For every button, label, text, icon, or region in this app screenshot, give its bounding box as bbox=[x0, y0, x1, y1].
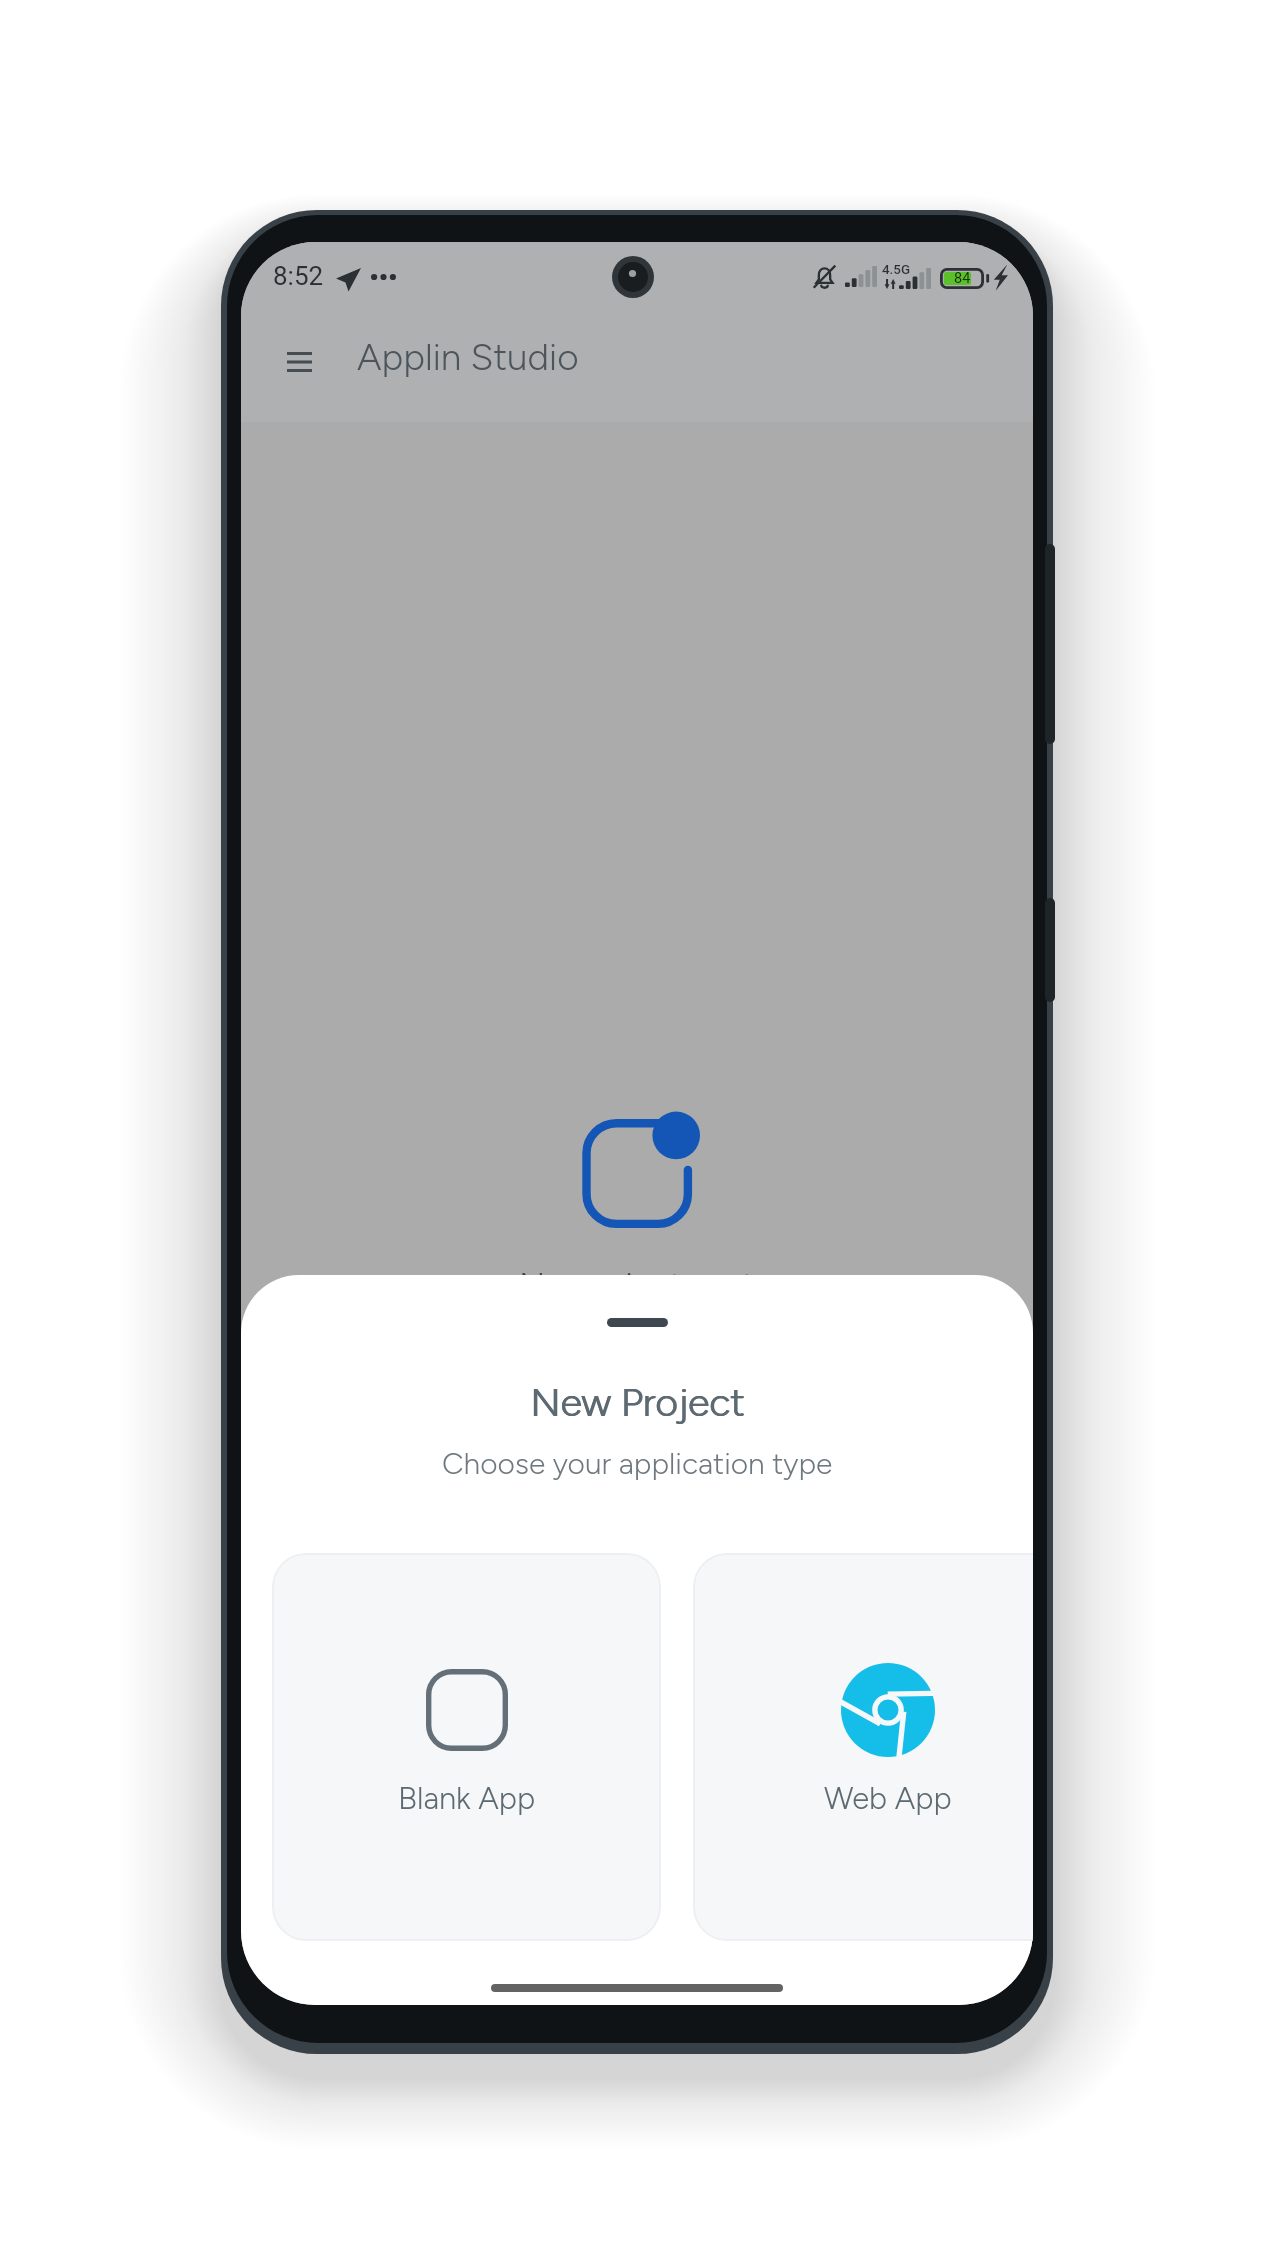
staticText: Applin Studio bbox=[357, 335, 579, 379]
staticText: No projects yet bbox=[519, 1266, 755, 1307]
button[interactable]: Blank App bbox=[272, 1553, 661, 1941]
staticText: 8:52 bbox=[273, 261, 324, 291]
staticText: 84 bbox=[954, 270, 971, 287]
staticText: Web App bbox=[824, 1780, 952, 1817]
staticText: Blank App bbox=[398, 1780, 536, 1817]
button[interactable]: Open navigation menu bbox=[263, 326, 335, 398]
staticText: New Project bbox=[531, 1379, 746, 1426]
staticText: 4.5G bbox=[882, 262, 911, 278]
staticText: New Project bbox=[530, 1379, 745, 1426]
button[interactable]: Web App bbox=[693, 1553, 1033, 1941]
staticText: New Project bbox=[530, 1379, 745, 1426]
staticText: Choose your application type bbox=[442, 1445, 833, 1481]
